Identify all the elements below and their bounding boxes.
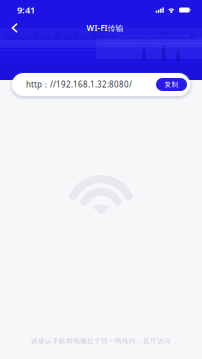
- button[interactable]: Back: [5, 18, 24, 37]
- staticText: 9:41: [17, 4, 35, 16]
- staticText: 请确认手机和电脑处于同一网络内，且可访问: [31, 337, 171, 345]
- staticText: WI-FI传输: [86, 23, 123, 33]
- button[interactable]: 复制: [156, 78, 187, 91]
- staticText: http：//192.168.1.32:8080/: [26, 79, 132, 90]
- staticText: 复制: [164, 80, 178, 89]
